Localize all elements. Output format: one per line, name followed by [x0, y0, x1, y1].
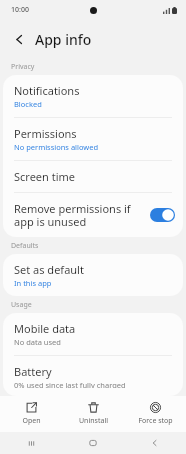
staticText: Remove permissions if app is unused: [14, 201, 142, 229]
button[interactable]: Back: [124, 432, 186, 454]
button[interactable]: Recents: [0, 432, 62, 454]
staticText: Blocked: [14, 99, 42, 109]
staticText: In this app: [14, 278, 52, 288]
staticText: No permissions allowed: [14, 142, 99, 152]
staticText: Mobile data: [14, 321, 76, 336]
staticText: 10:00: [11, 5, 29, 15]
staticText: Defaults: [11, 241, 39, 251]
button[interactable]: Permissions: [3, 118, 183, 160]
button[interactable]: Remove permissions if app is unused: [3, 193, 183, 237]
button[interactable]: Open: [0, 396, 62, 432]
staticText: Usage: [11, 300, 32, 310]
button[interactable]: Home: [62, 432, 124, 454]
button[interactable]: Set as default: [3, 254, 183, 296]
staticText: Privacy: [11, 62, 35, 72]
staticText: Force stop: [138, 416, 173, 426]
staticText: Permissions: [14, 126, 77, 141]
staticText: Uninstall: [79, 416, 108, 426]
button[interactable]: Notifications: [3, 75, 183, 117]
staticText: 0% used since last fully charged: [14, 380, 126, 388]
button[interactable]: Screen time: [3, 161, 183, 192]
button[interactable]: Force stop: [124, 396, 186, 432]
staticText: Set as default: [14, 262, 84, 277]
button[interactable]: Uninstall: [62, 396, 124, 432]
button[interactable]: Battery: [3, 356, 183, 396]
staticText: Open: [22, 416, 41, 426]
staticText: Battery: [14, 364, 52, 379]
staticText: No data used: [14, 337, 61, 347]
staticText: Screen time: [14, 169, 76, 184]
staticText: App info: [35, 30, 92, 49]
staticText: Notifications: [14, 83, 80, 98]
button[interactable]: Back: [9, 29, 29, 49]
button[interactable]: Mobile data: [3, 313, 183, 355]
